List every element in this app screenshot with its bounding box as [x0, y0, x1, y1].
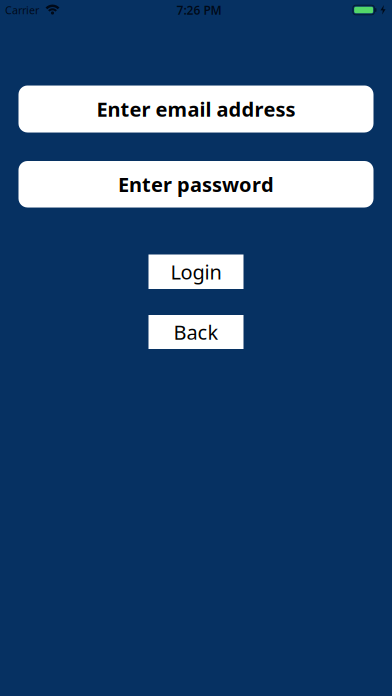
button[interactable]: Login — [148, 254, 243, 289]
button[interactable]: Back — [148, 315, 243, 349]
staticText: 7:26 PM — [176, 2, 221, 18]
staticText: Enter password — [118, 171, 274, 198]
staticText: Enter email address — [96, 96, 295, 122]
staticText: Login — [170, 258, 221, 285]
staticText: Back — [173, 319, 218, 345]
staticText: Carrier — [5, 3, 39, 17]
button[interactable]: Enter email address — [18, 85, 373, 132]
button[interactable]: Enter password — [18, 161, 373, 207]
